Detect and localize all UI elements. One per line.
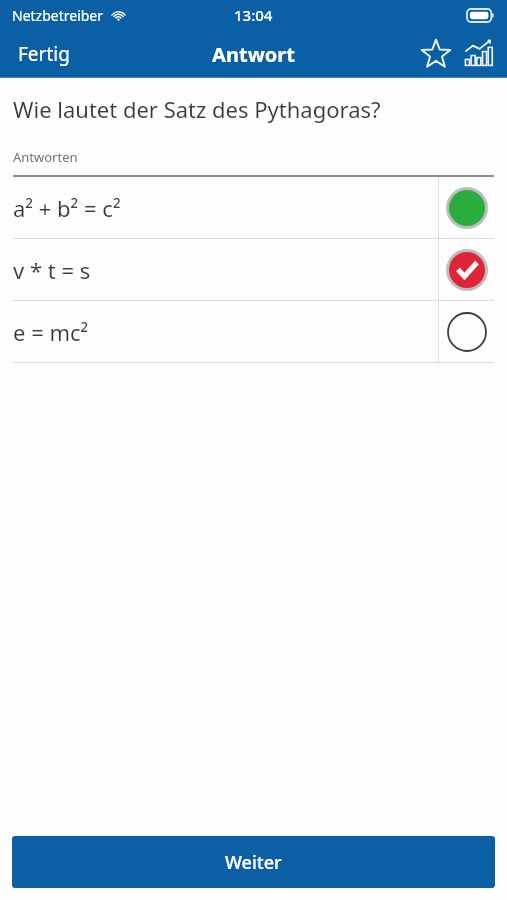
button[interactable]: a² + b² = c² bbox=[0, 177, 507, 238]
staticText: 13:04 bbox=[234, 5, 273, 25]
staticText: e = mc² bbox=[13, 317, 89, 347]
staticText: Netzbetreiber bbox=[12, 6, 104, 25]
staticText: Antwort bbox=[212, 41, 295, 68]
button[interactable]: e = mc² bbox=[0, 301, 507, 362]
button[interactable]: Statistik bbox=[457, 33, 499, 75]
staticText: a² + b² = c² bbox=[13, 193, 121, 223]
staticText: Fertig bbox=[18, 41, 70, 67]
staticText: Wie lautet der Satz des Pythagoras? bbox=[13, 94, 381, 124]
button[interactable]: Favorit bbox=[415, 33, 457, 75]
button[interactable]: Weiter bbox=[12, 836, 495, 888]
staticText: Antworten bbox=[13, 148, 78, 166]
staticText: v * t = s bbox=[13, 255, 91, 285]
button[interactable]: Fertig bbox=[0, 33, 88, 75]
staticText: Weiter bbox=[225, 850, 282, 875]
button[interactable]: v * t = s bbox=[0, 239, 507, 300]
